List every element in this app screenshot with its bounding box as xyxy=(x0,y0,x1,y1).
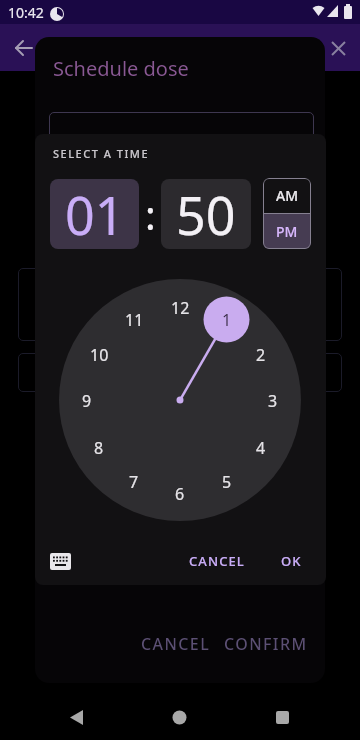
staticText: 11 xyxy=(125,309,144,329)
staticText: 10 xyxy=(90,344,109,364)
button[interactable]: OK xyxy=(268,546,314,576)
staticText: 3 xyxy=(268,390,278,410)
button[interactable]: CONFIRM xyxy=(217,629,315,659)
button[interactable] xyxy=(41,544,79,578)
staticText: CANCEL xyxy=(141,633,211,655)
staticText: PM xyxy=(276,222,298,241)
button[interactable]: CANCEL xyxy=(135,629,217,659)
staticText: 12 xyxy=(171,297,190,317)
staticText: 7 xyxy=(129,471,139,491)
button[interactable] xyxy=(60,701,92,733)
staticText: SELECT A TIME xyxy=(53,146,150,161)
button[interactable] xyxy=(266,701,298,733)
button[interactable]: 50 xyxy=(161,179,251,249)
button[interactable]: AM xyxy=(263,178,311,213)
staticText: CONFIRM xyxy=(224,633,308,655)
staticText: OK xyxy=(281,552,302,570)
button[interactable]: PM xyxy=(263,214,311,249)
button[interactable]: 01 xyxy=(50,179,139,249)
button[interactable] xyxy=(8,32,40,64)
button[interactable] xyxy=(322,32,354,64)
staticText: 10:42 xyxy=(8,3,44,22)
staticText: 2 xyxy=(256,344,266,364)
staticText: 01 xyxy=(65,179,125,249)
staticText: 8 xyxy=(94,437,104,457)
staticText: 4 xyxy=(256,437,266,457)
button[interactable] xyxy=(163,701,195,733)
staticText: 5 xyxy=(222,471,232,491)
staticText: Schedule dose xyxy=(53,55,189,82)
staticText: AM xyxy=(276,186,299,205)
staticText: 6 xyxy=(175,483,185,503)
staticText: CANCEL xyxy=(189,552,245,570)
button[interactable]: CANCEL xyxy=(181,546,253,576)
staticText: 9 xyxy=(82,390,92,410)
staticText: 1 xyxy=(222,309,232,329)
staticText: 50 xyxy=(176,179,236,249)
staticText: : xyxy=(145,187,156,241)
